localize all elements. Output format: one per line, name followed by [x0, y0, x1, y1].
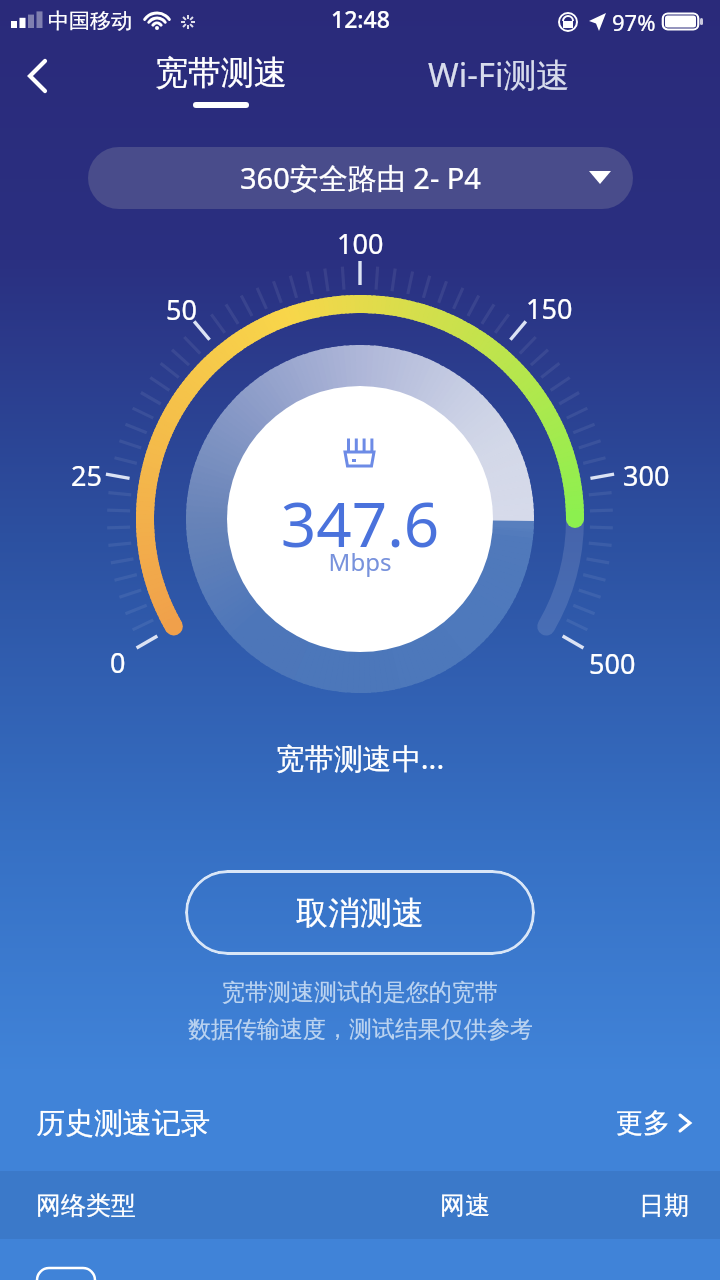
staticText: 日期 [639, 1190, 689, 1221]
staticText: 中国移动 [48, 8, 132, 34]
staticText: 100 [337, 225, 384, 261]
button[interactable]: 取消测速 [185, 870, 535, 955]
staticText: 25 [71, 457, 102, 493]
button[interactable]: 360安全路由 2- P4 [88, 147, 633, 209]
button[interactable]: 历史测速记录 [0, 1075, 720, 1171]
staticText: 0 [110, 644, 126, 680]
staticText: 宽带测速 [155, 52, 287, 94]
staticText: 宽带测速中... [0, 738, 720, 778]
staticText: 500 [589, 645, 636, 681]
staticText: 取消测速 [296, 893, 424, 933]
button[interactable]: Back [8, 46, 68, 106]
staticText: 360安全路由 2- P4 [240, 158, 481, 198]
staticText: 50 [166, 291, 197, 327]
staticText: 347.6 [0, 481, 720, 565]
staticText: 97% [612, 7, 656, 37]
staticText: 历史测速记录 [36, 1105, 210, 1142]
staticText: 300 [623, 457, 670, 493]
staticText: 12:48 [331, 3, 390, 34]
staticText: 网络类型 [36, 1190, 136, 1221]
staticText: 数据传输速度，测试结果仅供参考 [188, 1015, 533, 1044]
staticText: 150 [526, 290, 573, 326]
staticText: 宽带测速测试的是您的宽带 [222, 978, 498, 1007]
staticText: 更多 [616, 1106, 670, 1140]
staticText: Mbps [0, 545, 720, 578]
button[interactable]: 宽带测速 [155, 52, 287, 108]
button[interactable]: Wi-Fi测速 [428, 52, 570, 97]
staticText: 网速 [440, 1190, 490, 1221]
